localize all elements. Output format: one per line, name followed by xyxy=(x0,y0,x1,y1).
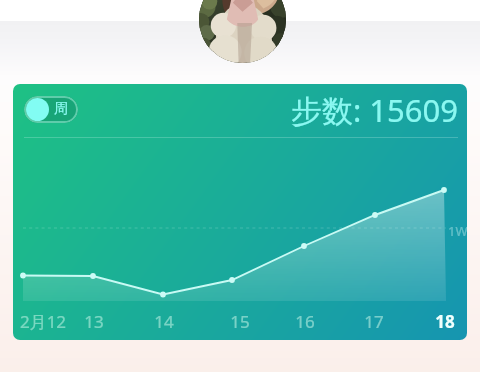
staticText: 14 xyxy=(119,310,209,333)
button[interactable]: Profile photo xyxy=(199,0,286,63)
staticText: 17 xyxy=(329,310,419,333)
staticText: 16 xyxy=(260,310,350,333)
staticText: 15 xyxy=(195,310,285,333)
staticText: 13 xyxy=(49,310,139,333)
button[interactable]: 周 xyxy=(24,96,78,123)
staticText: 2月12 xyxy=(13,310,88,333)
staticText: 周 xyxy=(54,100,68,118)
staticText: 18 xyxy=(400,310,467,333)
staticText: 步数: 15609 xyxy=(291,89,459,131)
staticText: 1W xyxy=(448,222,467,240)
